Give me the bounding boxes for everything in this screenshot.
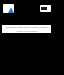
- staticText: Something went wrong. Please try again: [6, 26, 48, 29]
- button[interactable]: Account: [40, 5, 51, 12]
- button[interactable]: Something went wrong. Please try again: [2, 25, 51, 33]
- button[interactable]: App logo: [3, 4, 14, 13]
- staticText: Check your connection: [16, 30, 38, 33]
